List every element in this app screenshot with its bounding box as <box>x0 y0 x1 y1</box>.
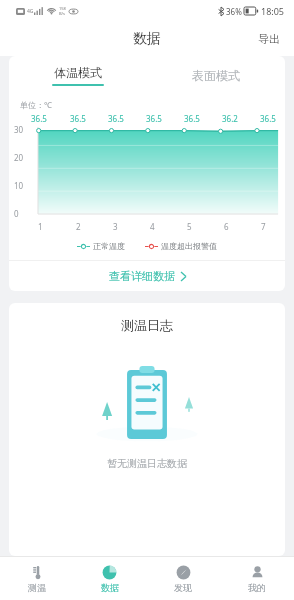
other: 测温 <box>29 565 44 580</box>
staticText: 36.5 <box>31 113 47 124</box>
staticText: 我的 <box>248 582 266 593</box>
staticText: 0 <box>14 208 19 219</box>
staticText: 20 <box>14 152 24 163</box>
button[interactable]: 查看详细数据 <box>9 261 285 291</box>
button[interactable]: 发现 <box>146 557 220 600</box>
staticText: B/s <box>59 11 66 16</box>
other: 发现 <box>176 565 191 580</box>
staticText: 发现 <box>174 582 192 593</box>
staticText: 测温 <box>28 582 46 593</box>
other: 我的 <box>250 565 265 580</box>
button[interactable]: 测温 <box>0 557 73 600</box>
staticText: 36.2 <box>222 113 238 124</box>
staticText: 4 <box>150 221 155 232</box>
staticText: 单位：℃ <box>20 99 52 110</box>
staticText: 10 <box>14 180 24 191</box>
staticText: 36.5 <box>146 113 162 124</box>
staticText: 导出 <box>258 32 280 46</box>
staticText: 正常温度 <box>93 241 125 251</box>
staticText: 36.5 <box>108 113 124 124</box>
staticText: 体温模式 <box>54 65 102 80</box>
staticText: 测温日志 <box>121 317 173 333</box>
button[interactable]: 导出 <box>244 25 294 53</box>
staticText: 数据 <box>133 30 161 48</box>
staticText: 3 <box>113 221 118 232</box>
staticText: 查看详细数据 <box>109 269 175 283</box>
staticText: 4G <box>27 8 34 15</box>
staticText: 1 <box>38 221 43 232</box>
staticText: 158 <box>59 6 66 11</box>
staticText: 6 <box>224 221 229 232</box>
button[interactable]: 数据 <box>73 557 146 600</box>
staticText: 36% <box>226 6 242 17</box>
staticText: 36.5 <box>260 113 276 124</box>
staticText: 18:05 <box>261 5 285 17</box>
staticText: 暂无测温日志数据 <box>107 457 187 470</box>
staticText: 2 <box>76 221 81 232</box>
staticText: 36.5 <box>70 113 86 124</box>
staticText: 5 <box>187 221 192 232</box>
staticText: 表面模式 <box>192 68 240 83</box>
button[interactable]: 我的 <box>220 557 294 600</box>
button[interactable]: 表面模式 <box>147 56 285 94</box>
staticText: 36.5 <box>184 113 200 124</box>
staticText: 数据 <box>101 582 119 593</box>
staticText: 30 <box>14 124 24 135</box>
staticText: 7 <box>261 221 266 232</box>
button[interactable]: 体温模式 <box>9 56 147 94</box>
staticText: 温度超出报警值 <box>161 241 217 251</box>
other: 数据 <box>102 565 117 580</box>
